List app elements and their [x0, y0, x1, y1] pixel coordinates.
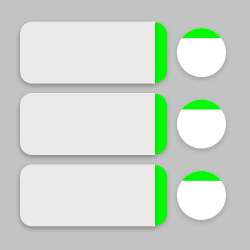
button[interactable]: Status [177, 171, 226, 220]
button[interactable] [20, 22, 167, 84]
button[interactable] [20, 164, 167, 226]
button[interactable]: Status [177, 28, 226, 77]
button[interactable] [20, 93, 167, 155]
button[interactable]: Status [177, 99, 226, 148]
